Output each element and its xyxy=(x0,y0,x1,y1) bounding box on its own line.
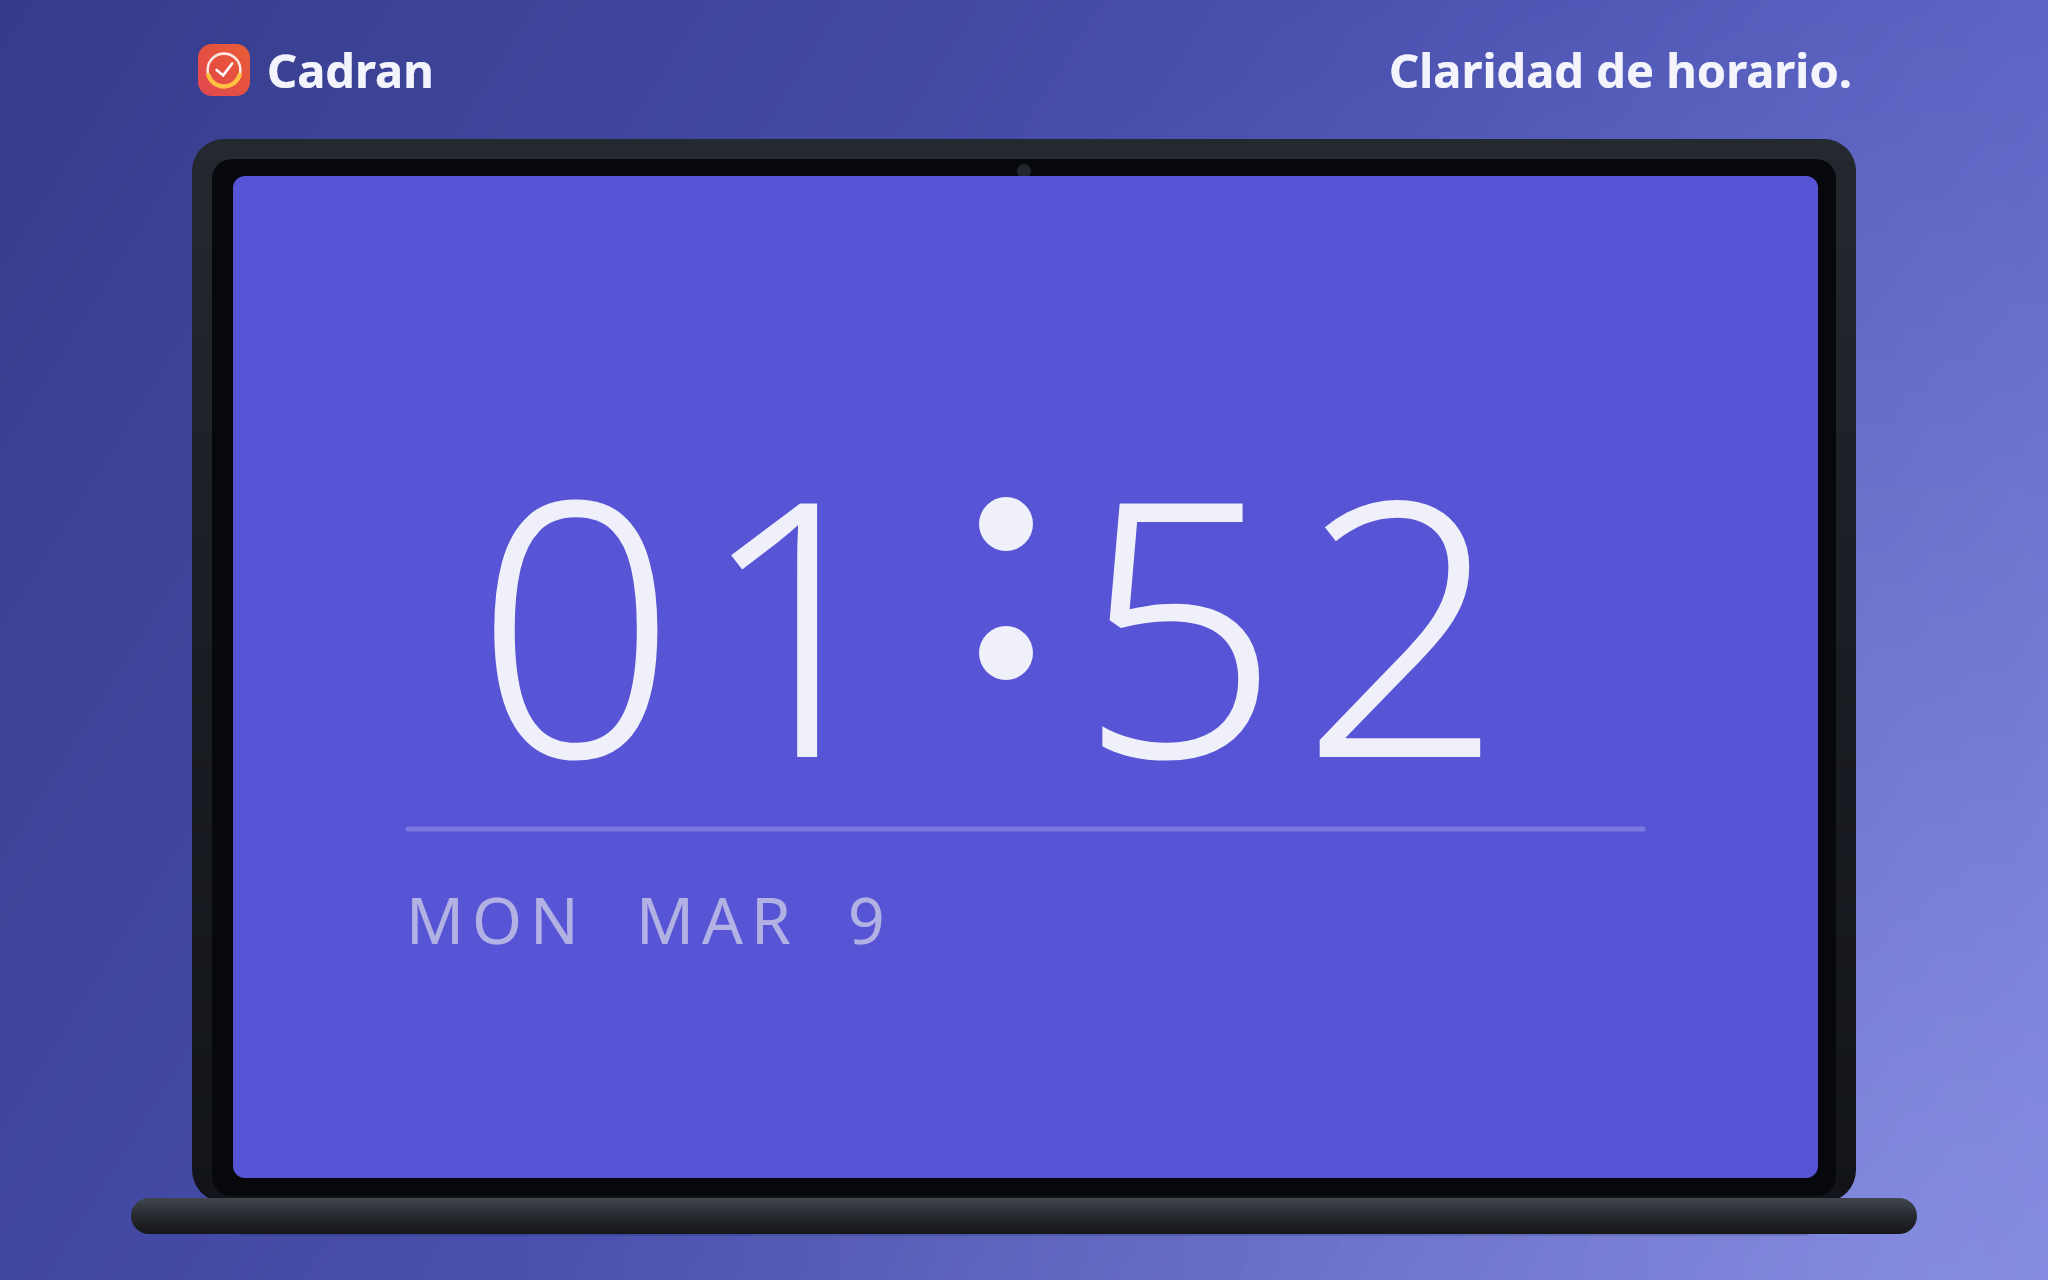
button[interactable]: Time 01:52, Monday March 9 xyxy=(0,0,2048,1280)
staticText: Cadran xyxy=(267,38,434,102)
staticText: 52 xyxy=(1078,378,1818,862)
other: Cadran app icon xyxy=(198,44,250,96)
staticText: 01 xyxy=(180,378,920,862)
button[interactable]: Cadran app icon xyxy=(198,38,434,102)
button[interactable]: Claridad de horario. xyxy=(1389,38,1852,102)
staticText: MON MAR 9 xyxy=(406,876,893,963)
